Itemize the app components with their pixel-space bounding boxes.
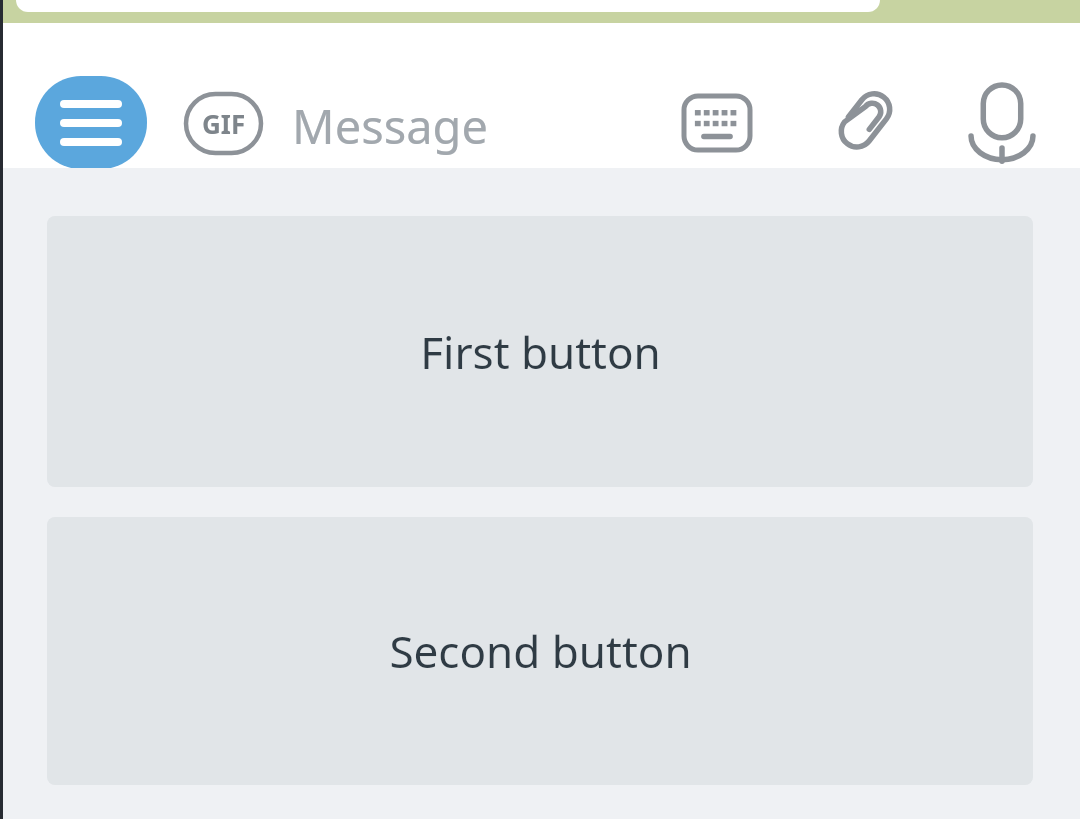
button[interactable]: Voice message — [966, 79, 1038, 163]
button[interactable]: Attach — [828, 81, 902, 161]
staticText: Second button — [389, 621, 692, 681]
staticText: Message — [292, 94, 488, 158]
button[interactable]: GIF — [186, 94, 261, 153]
staticText: GIF — [202, 106, 246, 141]
staticText: First button — [420, 322, 661, 382]
button[interactable]: Menu — [35, 76, 147, 169]
button[interactable]: Second button — [47, 517, 1033, 785]
button[interactable]: First button — [47, 216, 1033, 487]
button[interactable]: Keyboard — [684, 91, 750, 155]
